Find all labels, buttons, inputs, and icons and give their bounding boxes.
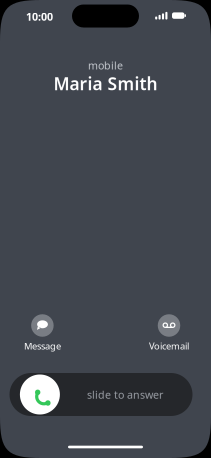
- button[interactable]: Slide to answer: [9, 373, 192, 416]
- button[interactable]: Message: [24, 314, 61, 352]
- button[interactable]: Voicemail: [149, 314, 189, 352]
- staticText: slide to answer: [87, 387, 163, 402]
- staticText: Message: [24, 340, 61, 352]
- staticText: Voicemail: [149, 340, 189, 352]
- staticText: mobile: [88, 58, 123, 72]
- staticText: 10:00: [26, 9, 53, 24]
- staticText: Maria Smith: [53, 72, 157, 95]
